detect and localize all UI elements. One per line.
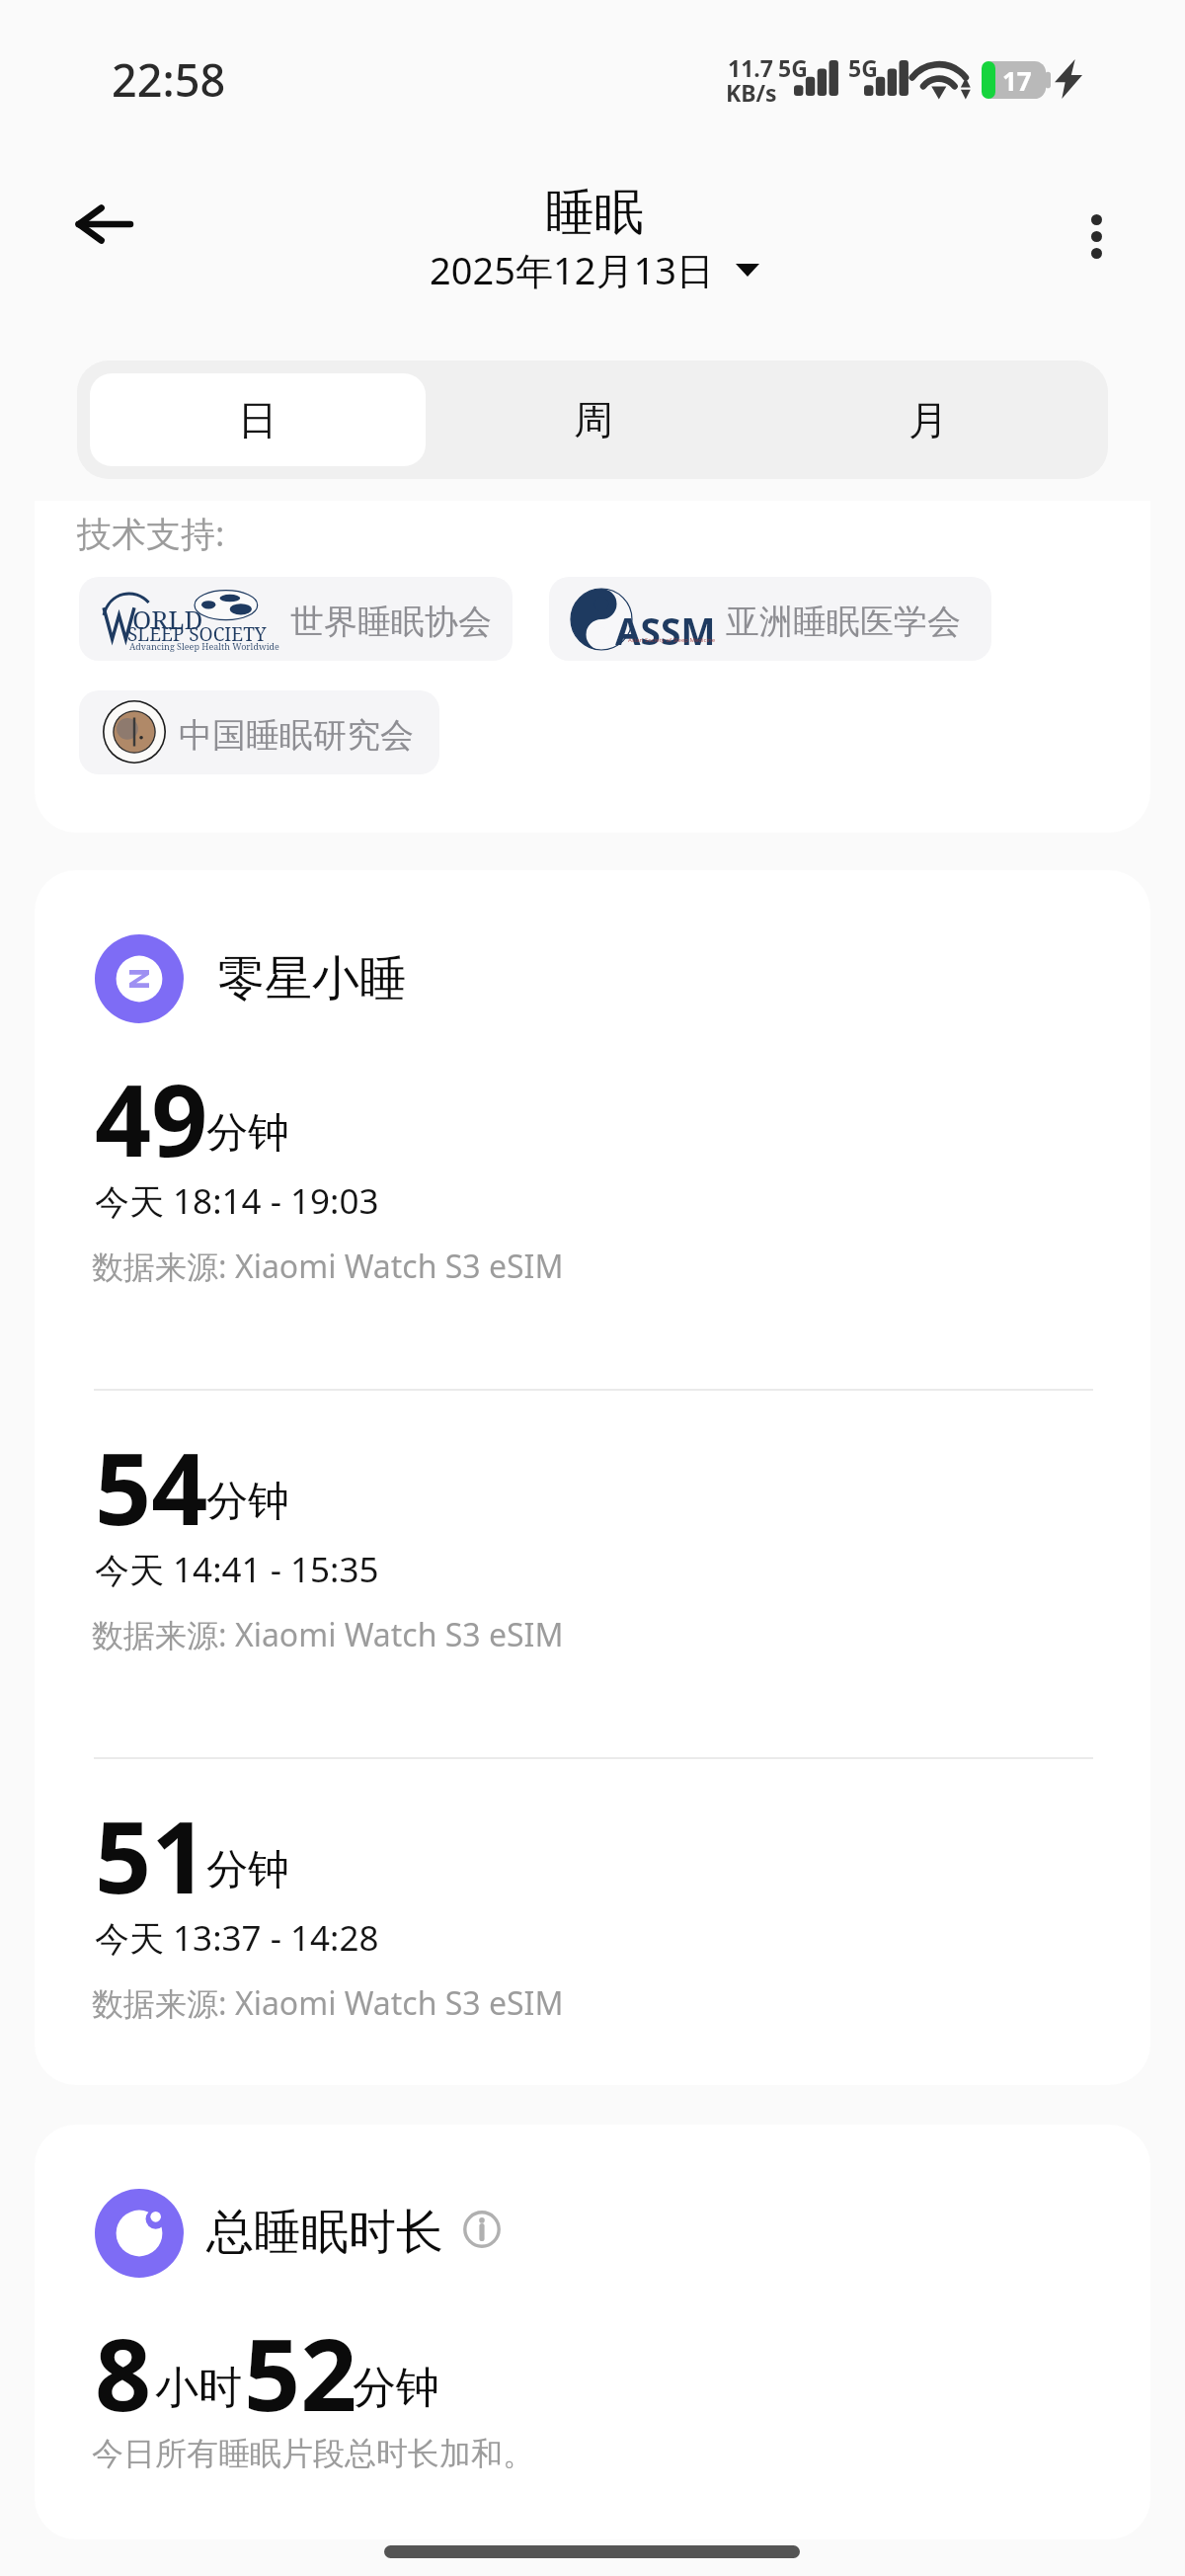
button[interactable]: 49 <box>59 1041 1126 1328</box>
staticText: 零星小睡 <box>217 949 407 1008</box>
staticText: 睡眠 <box>545 182 644 244</box>
staticText: 数据来源: Xiaomi Watch S3 eSIM <box>92 1245 564 1288</box>
button[interactable]: 54 <box>59 1409 1126 1696</box>
staticText: 日 <box>238 395 277 444</box>
staticText: 今天 14:41 - 15:35 <box>95 1546 379 1593</box>
staticText: 分钟 <box>353 2361 439 2415</box>
button[interactable]: Back <box>55 185 152 264</box>
button[interactable]: ORLD <box>79 577 513 661</box>
staticText: Advancing Sleep Health Worldwide <box>129 640 279 652</box>
staticText: 51 <box>95 1788 208 1922</box>
staticText: KB/s <box>726 77 777 108</box>
button[interactable]: Info <box>463 2211 501 2248</box>
button[interactable]: 中国睡眠研究会 <box>79 690 439 774</box>
staticText: 亚洲睡眠医学会 <box>726 601 961 643</box>
button[interactable]: 月 <box>760 373 1095 466</box>
staticText: Asian Society of Sleep Medicine <box>628 636 716 644</box>
staticText: 技术支持: <box>77 510 225 557</box>
staticText: 今日所有睡眠片段总时长加和。 <box>92 2434 534 2473</box>
staticText: 今天 13:37 - 14:28 <box>95 1914 379 1962</box>
staticText: 22:58 <box>112 49 226 110</box>
button[interactable]: ASSM <box>549 577 991 661</box>
staticText: SLEEP SOCIETY <box>127 621 267 647</box>
staticText: 8 <box>95 2305 152 2440</box>
button[interactable]: More options <box>1057 197 1136 276</box>
staticText: 总睡眠时长 <box>206 2203 443 2262</box>
staticText: 分钟 <box>206 1476 289 1528</box>
button[interactable]: 2025年12月13日 <box>430 244 759 295</box>
staticText: 中国睡眠研究会 <box>179 714 414 757</box>
staticText: 周 <box>574 395 613 444</box>
staticText: 月 <box>908 395 948 444</box>
staticText: 世界睡眠协会 <box>290 601 492 643</box>
staticText: 分钟 <box>206 1107 289 1160</box>
staticText: 54 <box>95 1419 208 1554</box>
staticText: ASSM <box>615 605 716 655</box>
staticText: ORLD <box>132 602 203 636</box>
staticText: 分钟 <box>206 1844 289 1896</box>
staticText: 52 <box>244 2305 357 2440</box>
staticText: 5G <box>778 52 808 83</box>
staticText: 小时 <box>155 2361 242 2415</box>
staticText: 11.7 <box>728 52 773 83</box>
staticText: 数据来源: Xiaomi Watch S3 eSIM <box>92 1981 564 2025</box>
button[interactable]: 周 <box>426 373 760 466</box>
staticText: 17 <box>1002 63 1032 98</box>
staticText: 2025年12月13日 <box>430 244 714 295</box>
staticText: 49 <box>95 1051 208 1185</box>
button[interactable]: 日 <box>90 373 426 466</box>
staticText: 5G <box>848 52 878 83</box>
staticText: 今天 18:14 - 19:03 <box>95 1177 379 1225</box>
staticText: 数据来源: Xiaomi Watch S3 eSIM <box>92 1613 564 1656</box>
button[interactable]: 51 <box>59 1778 1126 2064</box>
